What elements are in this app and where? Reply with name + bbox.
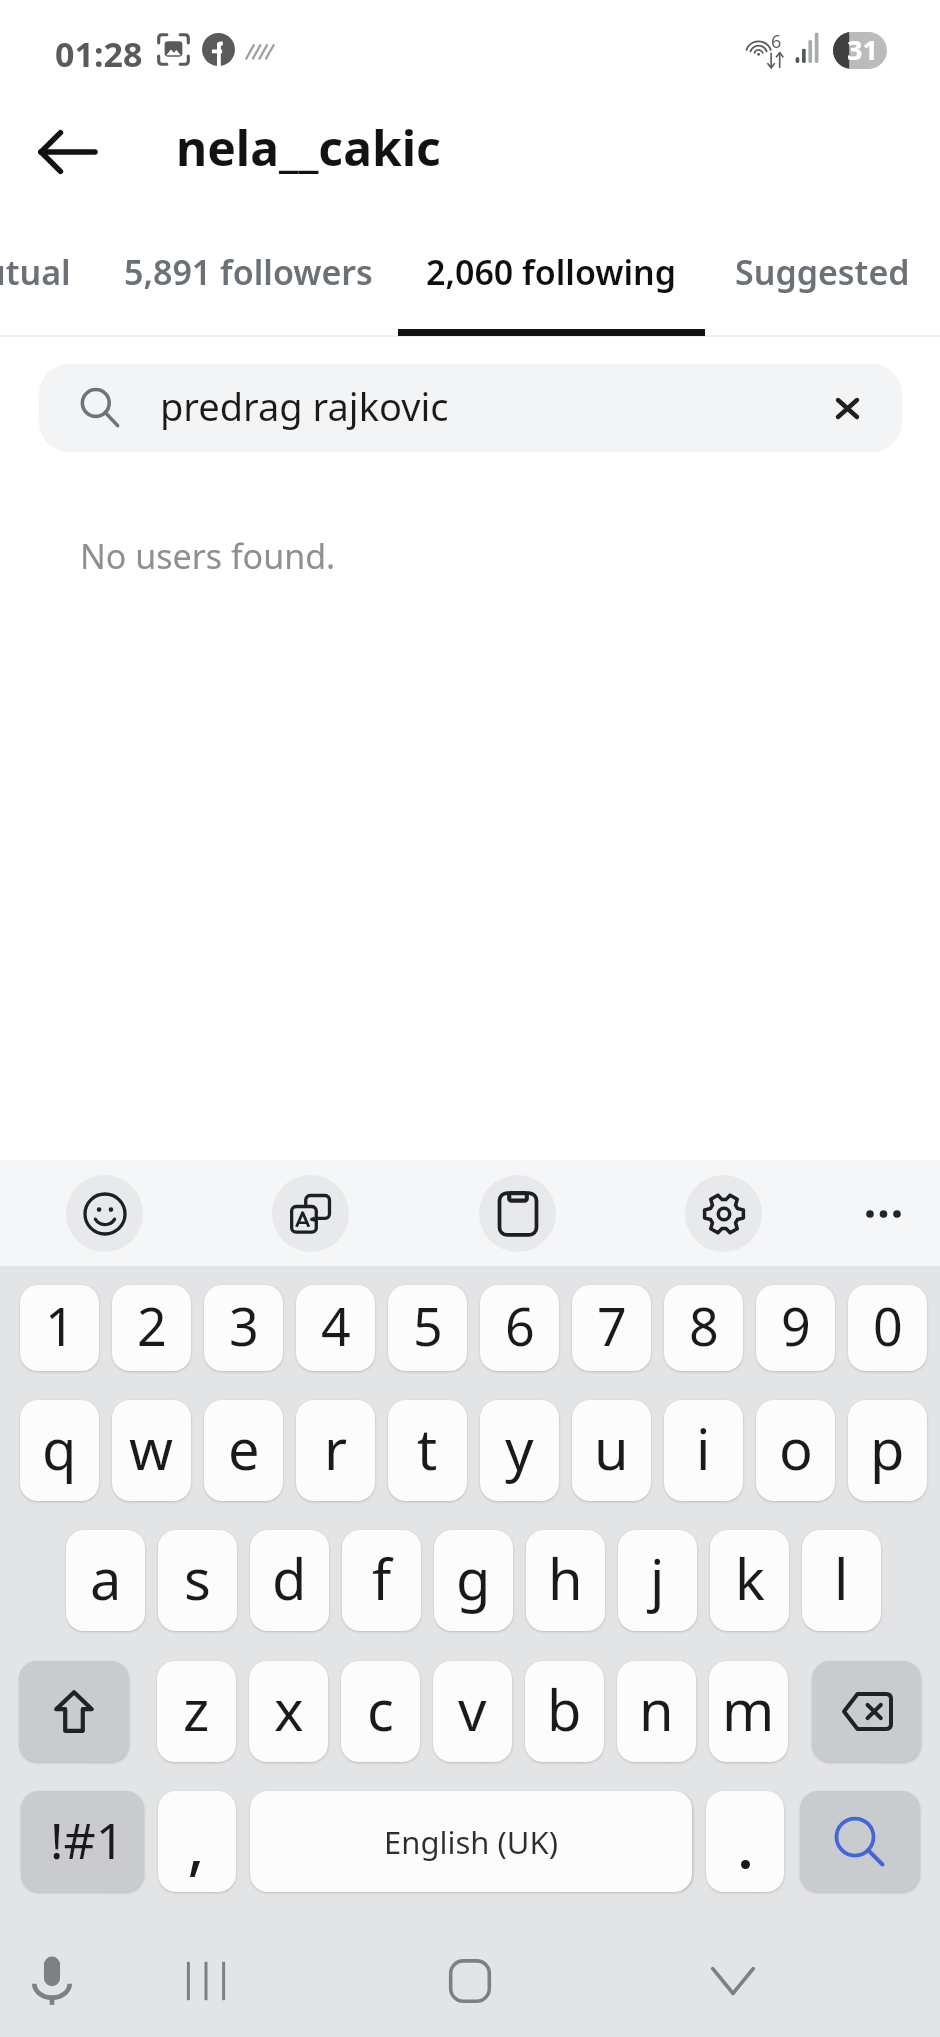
staticText: 1 [45,1290,75,1361]
staticText: t [417,1410,438,1486]
button[interactable]: d [250,1530,329,1631]
staticText: 3 [229,1290,259,1361]
button[interactable]: utual [0,223,71,321]
button[interactable]: 1 [20,1285,99,1371]
staticText: 01:28 [55,31,143,77]
button[interactable]: k [710,1530,789,1631]
staticText: r [324,1410,348,1486]
button[interactable]: predrag rajkovic [39,364,902,452]
button[interactable]: a [66,1530,145,1631]
button[interactable]: 2,060 following [398,223,705,321]
button[interactable]: 2 [112,1285,191,1371]
staticText: p [870,1410,905,1486]
button[interactable]: 4 [296,1285,375,1371]
staticText: n [639,1671,674,1747]
button[interactable]: f [342,1530,421,1631]
button[interactable]: 8 [664,1285,743,1371]
staticText: l [834,1540,849,1616]
button[interactable]: Translate [272,1175,349,1252]
button[interactable]: u [572,1400,651,1501]
button[interactable]: Search [800,1791,920,1892]
button[interactable]: n [617,1661,696,1762]
button[interactable]: r [296,1400,375,1501]
button[interactable]: 5,891 followers [110,223,386,321]
button[interactable]: Backspace [812,1661,921,1762]
button[interactable]: 7 [572,1285,651,1371]
staticText: c [367,1671,394,1747]
staticText: h [548,1540,583,1616]
button[interactable]: x [249,1661,328,1762]
staticText: i [696,1410,711,1486]
staticText: 31 [847,32,878,68]
button[interactable]: Clear search [812,373,882,443]
button[interactable]: Clipboard [479,1175,556,1252]
staticText: 6 [771,29,782,54]
staticText: 0 [873,1290,903,1361]
staticText: 2 [137,1290,167,1361]
button[interactable] [706,1791,784,1892]
button[interactable]: Shift [19,1661,129,1762]
button[interactable]: o [756,1400,835,1501]
staticText: d [272,1540,307,1616]
staticText: q [42,1410,77,1486]
button[interactable]: v [433,1661,512,1762]
button[interactable]: t [388,1400,467,1501]
button[interactable]: q [20,1400,99,1501]
staticText: predrag rajkovic [160,380,449,432]
button[interactable]: 5 [388,1285,467,1371]
button[interactable] [158,1791,236,1892]
button[interactable]: l [802,1530,881,1631]
staticText: 4 [321,1290,351,1361]
staticText: j [650,1540,665,1616]
button[interactable]: j [618,1530,697,1631]
staticText: b [547,1671,582,1747]
staticText: k [735,1540,765,1616]
staticText: English (UK) [384,1821,558,1863]
staticText: u [594,1410,629,1486]
staticText: 9 [781,1290,811,1361]
button[interactable]: Keyboard settings [685,1175,762,1252]
button[interactable]: i [664,1400,743,1501]
button[interactable]: Voice input [0,1926,107,2036]
button[interactable]: !#1 [21,1791,144,1892]
button[interactable]: Home [415,1926,525,2036]
button[interactable]: s [158,1530,237,1631]
button[interactable]: Hide keyboard [678,1926,788,2036]
staticText: w [129,1410,174,1486]
button[interactable]: g [434,1530,513,1631]
button[interactable]: h [526,1530,605,1631]
button[interactable]: e [204,1400,283,1501]
staticText: 6 [505,1290,535,1361]
staticText: 5 [413,1290,443,1361]
staticText: z [183,1671,210,1747]
button[interactable]: Recent apps [151,1926,261,2036]
button[interactable]: 0 [848,1285,927,1371]
staticText: y [505,1410,534,1486]
button[interactable]: 9 [756,1285,835,1371]
staticText: 5,891 followers [124,249,373,295]
button[interactable]: English (UK) [250,1791,692,1892]
button[interactable]: p [848,1400,927,1501]
staticText: a [90,1540,122,1616]
button[interactable]: Back [18,104,118,200]
button[interactable]: Emoji [66,1175,143,1252]
staticText: s [184,1540,211,1616]
staticText: Suggested [735,249,910,295]
button[interactable]: 6 [480,1285,559,1371]
button[interactable]: 3 [204,1285,283,1371]
button[interactable]: z [157,1661,236,1762]
button[interactable]: More options [845,1176,921,1252]
staticText: e [228,1410,260,1486]
staticText: v [458,1671,487,1747]
staticText: 7 [597,1290,627,1361]
button[interactable]: w [112,1400,191,1501]
button[interactable]: c [341,1661,420,1762]
button[interactable]: y [480,1400,559,1501]
button[interactable]: m [709,1661,788,1762]
staticText: g [456,1540,491,1616]
staticText: !#1 [50,1806,125,1874]
staticText: 8 [689,1290,719,1361]
staticText: x [274,1671,304,1747]
button[interactable]: b [525,1661,604,1762]
button[interactable]: Suggested [716,223,928,321]
